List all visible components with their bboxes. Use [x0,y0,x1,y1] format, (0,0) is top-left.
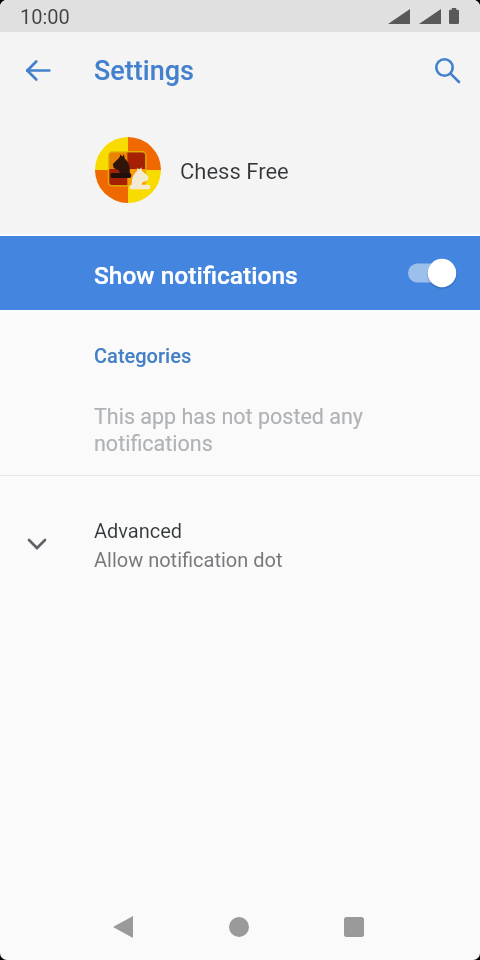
button[interactable]: Back [93,897,153,957]
staticText: 10:00 [20,5,70,28]
button[interactable]: Search [424,47,472,95]
button[interactable]: Advanced [0,476,480,596]
staticText: Chess Free [180,159,289,185]
button[interactable]: Home [209,897,269,957]
staticText: Settings [94,55,194,87]
staticText: Advanced [94,519,183,542]
staticText: This app has not posted any notification… [94,404,369,457]
staticText: Categories [94,344,192,367]
staticText: Allow notification dot [94,548,283,571]
button[interactable]: Back [14,47,62,95]
staticText: Show notifications [94,261,298,290]
button[interactable]: Recent apps [324,897,384,957]
button[interactable]: Show notifications [0,236,480,310]
